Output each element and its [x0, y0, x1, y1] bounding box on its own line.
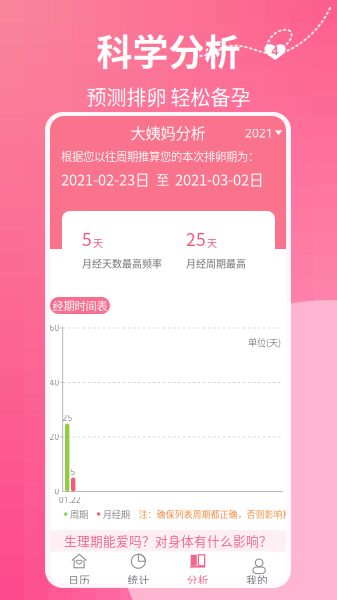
staticText: 生理期能爱吗？对身体有什么影响？ — [64, 531, 272, 550]
button[interactable]: 我的 — [227, 551, 286, 588]
staticText: 天 — [93, 235, 103, 250]
staticText: 天 — [207, 235, 217, 250]
staticText: 月经天数最高频率 — [82, 256, 162, 270]
staticText: 分析 — [187, 572, 209, 587]
staticText: 2021 — [245, 125, 273, 141]
button[interactable]: 生理期能爱吗？对身体有什么影响？ — [50, 530, 286, 551]
staticText: 日历 — [68, 572, 90, 587]
staticText: 月经周期最高 — [186, 256, 246, 270]
staticText: 0 — [54, 486, 59, 497]
button[interactable]: 分析 — [168, 551, 227, 588]
staticText: 科学分析 — [96, 24, 240, 76]
staticText: 60 — [49, 323, 59, 333]
staticText: 统计 — [127, 572, 149, 587]
staticText: 2021-02-23日 — [61, 168, 150, 190]
staticText: 25 — [186, 226, 206, 251]
staticText: 25 — [62, 413, 72, 423]
staticText: 至 — [150, 169, 175, 189]
staticText: 01.22 — [59, 495, 81, 505]
staticText: 单位(天) — [248, 335, 281, 349]
staticText: 周期 — [70, 507, 88, 521]
staticText: 月经期 — [103, 507, 130, 521]
staticText: 4 — [271, 42, 278, 58]
button[interactable]: 日历 — [49, 551, 109, 588]
button[interactable]: 2021 — [240, 120, 287, 146]
staticText: 40 — [49, 377, 59, 388]
staticText: 5 — [70, 467, 75, 477]
staticText: 5 — [82, 226, 92, 251]
staticText: 预测排卵 轻松备孕 — [86, 82, 250, 111]
staticText: 2021-03-02日 — [175, 168, 264, 190]
button[interactable]: 统计 — [109, 551, 168, 588]
staticText: 注：确保列表周期都正确，否则影响推算 — [139, 508, 301, 520]
staticText: 大姨妈分析 — [130, 121, 205, 143]
staticText: 根据您以往周期推算您的本次排卵期为： — [61, 148, 259, 164]
staticText: 20 — [49, 432, 59, 442]
staticText: 经期时间表 — [52, 297, 107, 314]
staticText: 我的 — [246, 572, 268, 587]
